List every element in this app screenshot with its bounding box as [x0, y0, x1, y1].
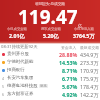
button[interactable]: 6 — [1, 90, 99, 98]
staticText: 273.3万 — [80, 59, 99, 66]
button[interactable]: 贵州茅台股 — [1, 50, 99, 58]
staticText: 贵州茅台股 — [7, 51, 29, 57]
staticText: 资金流入 — [61, 45, 77, 50]
staticText: 28.88% — [59, 51, 78, 58]
staticText: 宁德时代新能 — [7, 59, 34, 65]
staticText: 6 — [2, 92, 5, 96]
staticText: 2.01亿 — [9, 32, 25, 39]
staticText: 142.2万 — [80, 91, 99, 98]
staticText: 8.71% — [62, 67, 78, 74]
staticText: 科技巨头·总成交额 — [0, 1, 100, 6]
staticText: 175.9万 — [80, 75, 99, 82]
staticText: 4 — [2, 76, 5, 80]
staticText: 434.9万 — [80, 51, 99, 58]
staticText: 119.47 — [18, 4, 78, 30]
staticText: 今日成交金额 — [7, 27, 27, 31]
button[interactable]: 招商银行 — [1, 66, 99, 74]
staticText: 14.53% — [59, 59, 78, 66]
staticText: 亿 — [78, 23, 82, 28]
button[interactable]: 宁德时代新能 — [1, 58, 99, 66]
staticText: 6.71% — [62, 75, 78, 82]
staticText: 德赛电池科技股 — [7, 83, 38, 89]
button[interactable]: 4 — [1, 74, 99, 82]
staticText: 5.67% — [62, 83, 78, 90]
staticText: 4.92% — [62, 91, 78, 98]
button[interactable]: 5 — [1, 82, 99, 90]
staticText: 长安汽车集团 — [7, 75, 34, 81]
staticText: 东方财富证券 — [7, 91, 34, 97]
staticText: 今日净流入额 — [74, 27, 94, 31]
staticText: 最新成交额 — [80, 45, 99, 50]
staticText: 5.20亿 — [43, 32, 59, 39]
staticText: 3764.5万 — [73, 32, 95, 39]
staticText: 08:31持续更新92天 — [1, 44, 38, 50]
staticText: 招商银行 — [7, 67, 25, 73]
staticText: 178.4万 — [80, 83, 99, 90]
staticText: 5 — [2, 84, 5, 88]
staticText: 新高 — [40, 84, 47, 88]
staticText: 170.9万 — [80, 67, 99, 74]
staticText: 两市成交金额 — [41, 27, 61, 31]
